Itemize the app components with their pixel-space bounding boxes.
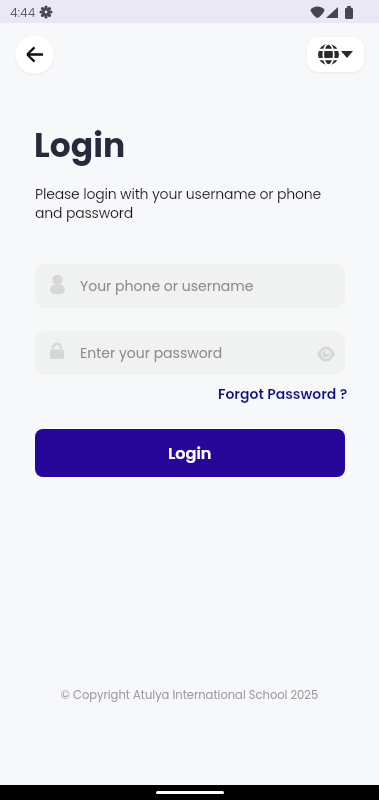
staticText: Login xyxy=(34,122,126,168)
button[interactable]: Your phone or username xyxy=(35,264,345,308)
staticText: Forgot Password ? xyxy=(218,384,348,404)
button[interactable]: Login xyxy=(35,429,345,477)
button[interactable]: Show password xyxy=(313,340,339,366)
button[interactable]: Back xyxy=(15,35,54,74)
staticText: Your phone or username xyxy=(80,276,254,296)
staticText: Login xyxy=(168,442,212,464)
staticText: © Copyright Atulya International School … xyxy=(0,687,379,703)
button[interactable]: Enter your password xyxy=(35,331,345,375)
staticText: Enter your password xyxy=(80,343,313,363)
staticText: 4:44 xyxy=(10,4,36,21)
button[interactable]: Change language xyxy=(307,37,364,72)
button[interactable]: Forgot Password ? xyxy=(218,384,348,404)
staticText: Please login with your username or phone… xyxy=(35,184,335,223)
